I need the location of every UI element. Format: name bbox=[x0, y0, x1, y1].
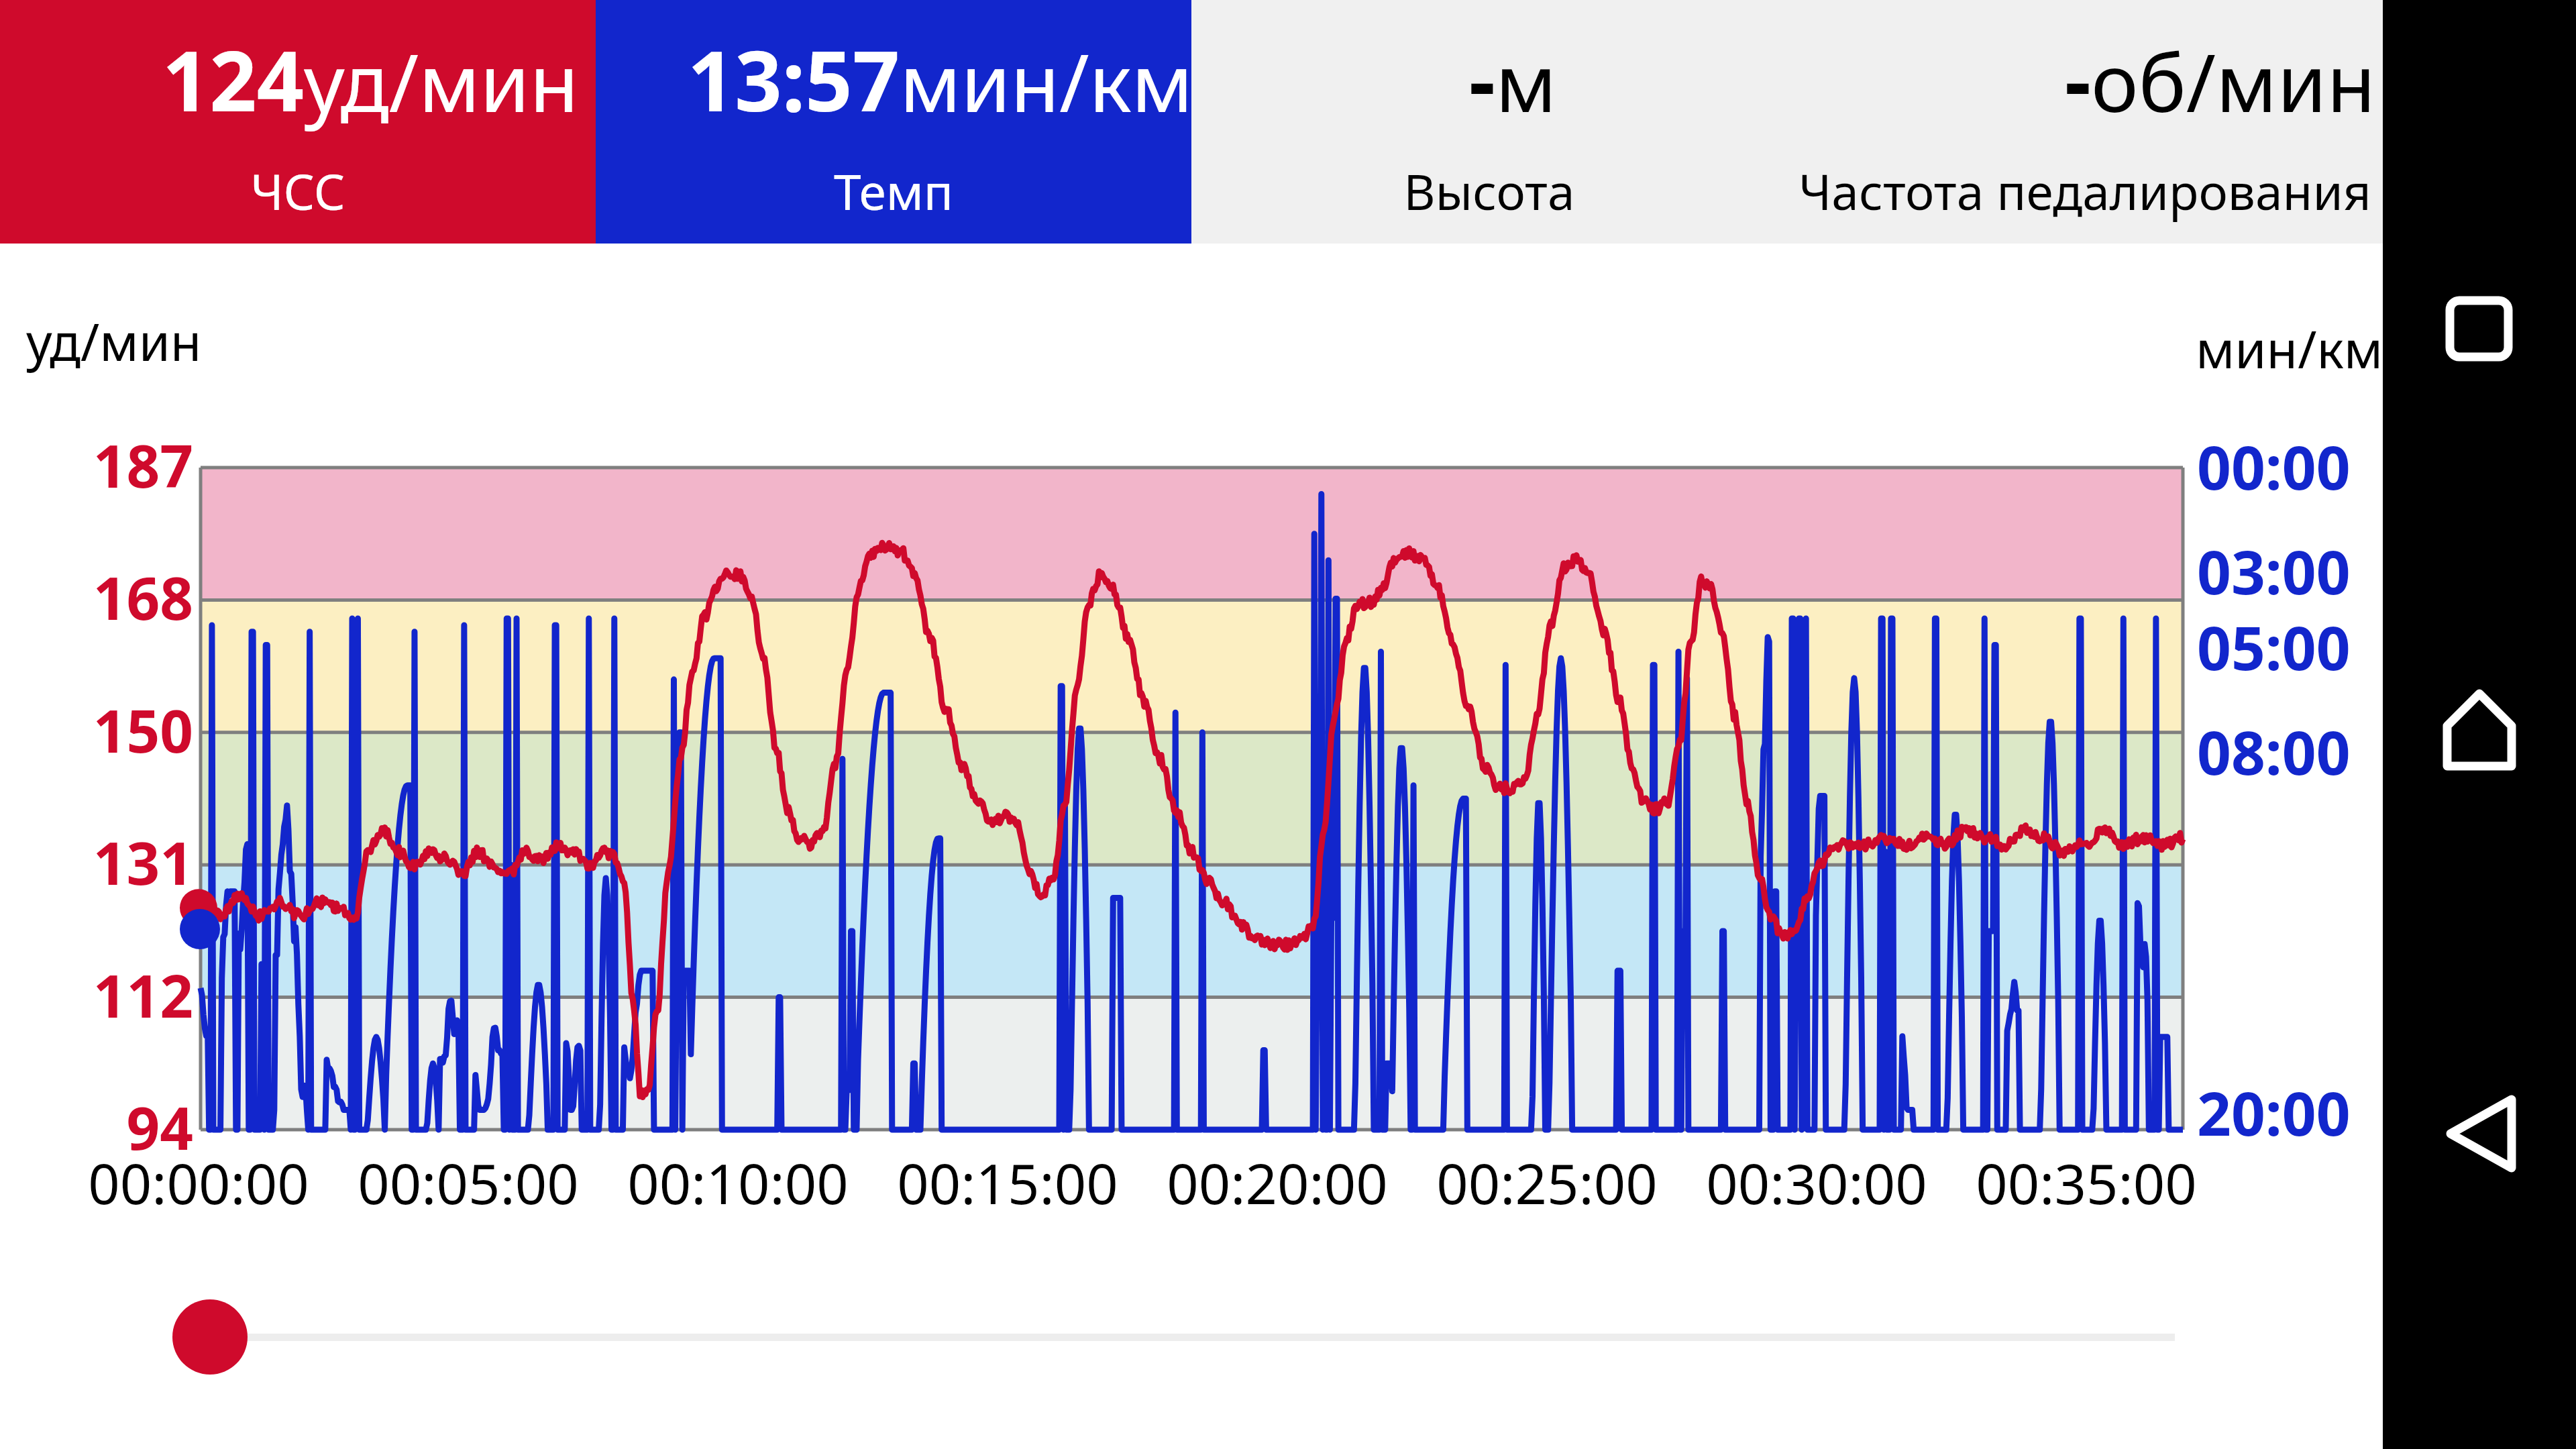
staticText: уд/мин bbox=[26, 307, 202, 376]
button[interactable]: Back bbox=[2419, 1073, 2540, 1194]
staticText: 168 bbox=[3, 557, 193, 637]
staticText: 00:00 bbox=[2197, 426, 2351, 507]
staticText: 05:00 bbox=[2197, 606, 2351, 688]
staticText: Частота педалирования bbox=[1787, 158, 2383, 224]
staticText: мин/км bbox=[900, 27, 1197, 136]
staticText: уд/мин bbox=[304, 27, 602, 136]
button[interactable]: - bbox=[1787, 0, 2383, 244]
button[interactable]: Home bbox=[2419, 669, 2540, 790]
button[interactable]: Timeline position bbox=[172, 1297, 2175, 1377]
staticText: 20:00 bbox=[2197, 1072, 2351, 1153]
staticText: 131 bbox=[3, 822, 193, 902]
staticText: 00:25:00 bbox=[1413, 1144, 1681, 1220]
staticText: 112 bbox=[3, 955, 193, 1034]
button[interactable]: 13:57 bbox=[596, 0, 1191, 244]
staticText: 150 bbox=[3, 690, 193, 769]
staticText: об/мин bbox=[2091, 27, 2389, 136]
staticText: 00:15:00 bbox=[873, 1144, 1142, 1220]
staticText: Темп bbox=[596, 158, 1191, 224]
button[interactable]: Recent apps bbox=[2419, 268, 2540, 389]
staticText: 00:05:00 bbox=[334, 1144, 602, 1220]
button[interactable]: Heart rate and pace graph bbox=[201, 468, 2183, 1130]
staticText: Высота bbox=[1191, 158, 1787, 224]
staticText: 08:00 bbox=[2197, 711, 2351, 792]
button[interactable]: - bbox=[1191, 0, 1787, 244]
staticText: 00:10:00 bbox=[604, 1144, 872, 1220]
staticText: - bbox=[1793, 23, 2091, 136]
staticText: 00:30:00 bbox=[1682, 1144, 1951, 1220]
staticText: 03:00 bbox=[2197, 531, 2351, 612]
staticText: 00:35:00 bbox=[1952, 1144, 2220, 1220]
staticText: ЧСС bbox=[0, 158, 596, 224]
staticText: 00:20:00 bbox=[1143, 1144, 1411, 1220]
staticText: 187 bbox=[3, 425, 193, 504]
staticText: 00:00:00 bbox=[64, 1144, 333, 1220]
staticText: 124 bbox=[6, 23, 304, 136]
staticText: - bbox=[1197, 23, 1495, 136]
staticText: мин/км bbox=[2196, 314, 2383, 384]
staticText: 13:57 bbox=[602, 23, 900, 136]
button[interactable]: 124 bbox=[0, 0, 596, 244]
staticText: м bbox=[1495, 27, 1793, 136]
staticText: 94 bbox=[3, 1087, 193, 1167]
